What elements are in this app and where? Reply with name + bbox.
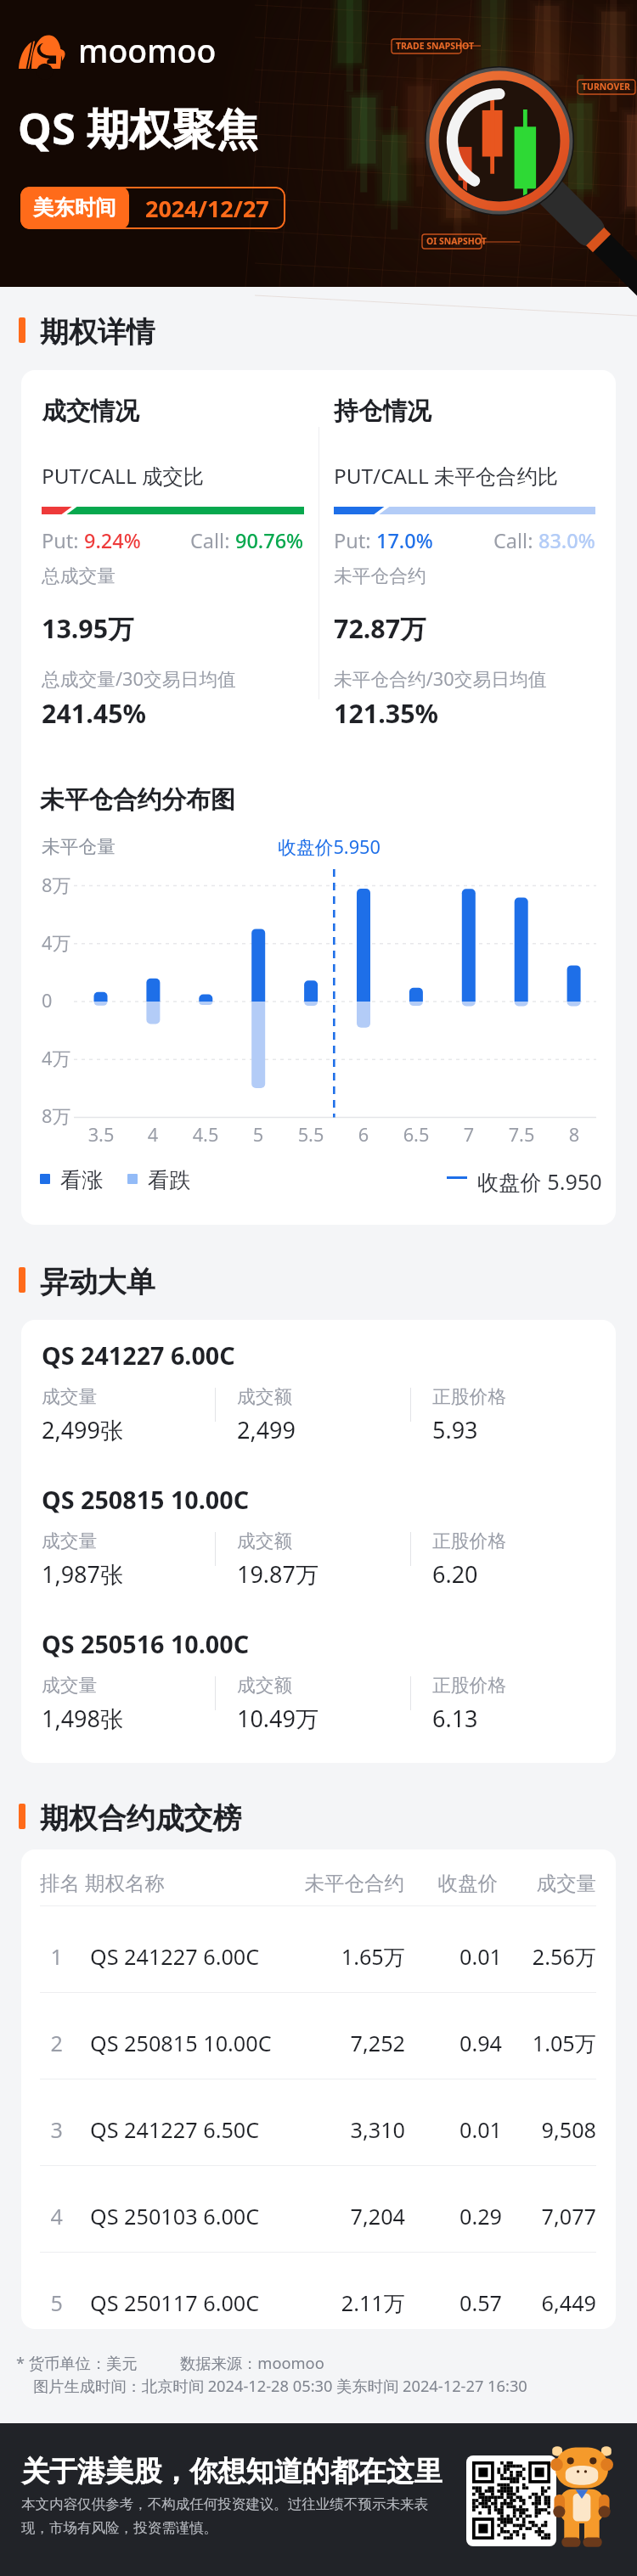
staticText: 2.11万 [277,2288,405,2317]
staticText: 期权详情 [40,314,155,351]
staticText: TRADE SNAPSHOT [396,40,474,52]
staticText: 1,498张 [42,1703,123,1734]
staticText: 5.5 [285,1122,336,1148]
staticText: Call: [190,527,235,554]
staticText: 图片生成时间：北京时间 2024-12-28 05:30 美东时间 2024-1… [33,2375,527,2396]
staticText: 美东时间 [33,195,116,222]
staticText: 2,499 [237,1414,296,1445]
staticText: 6 [338,1122,389,1148]
staticText: 9,508 [502,2115,596,2144]
staticText: 7,252 [277,2029,405,2057]
other: QR code [466,2455,556,2546]
button[interactable]: 2 [0,1993,637,2079]
staticText: 收盘价 [404,1871,498,1896]
staticText: 241.45% [42,695,147,730]
staticText: 8万 [42,873,71,898]
staticText: 7,077 [502,2202,596,2231]
staticText: Put: [42,527,84,554]
staticText: 6,449 [502,2288,596,2317]
staticText: 收盘价5.950 [270,834,381,860]
button[interactable]: QS 241227 6.00C [21,1332,616,1468]
staticText: 90.76% [235,527,304,554]
staticText: 7 [443,1122,494,1148]
staticText: 6.13 [432,1703,478,1734]
staticText: 未平仓合约 [334,564,426,587]
staticText: 121.35% [334,695,439,730]
staticText: 看跌 [148,1167,191,1194]
button[interactable]: QS 250516 10.00C [21,1620,616,1756]
staticText: OI SNAPSHOT [426,235,487,247]
staticText: 数据来源：moomoo [180,2352,324,2373]
staticText: 期权合约成交榜 [40,1800,242,1837]
staticText: 13.95万 [42,610,134,646]
staticText: 未平仓合约/30交易日均值 [334,666,547,692]
staticText: 1 [22,1942,63,1971]
staticText: TURNOVER [582,81,630,93]
button[interactable]: 3 [0,2079,637,2165]
staticText: Put: [334,527,376,554]
staticText: 总成交量/30交易日均值 [42,666,236,692]
staticText: 10.49万 [237,1703,318,1734]
button[interactable]: 4 [0,2166,637,2252]
staticText: 5.93 [432,1414,478,1445]
staticText: 8 [549,1122,600,1148]
staticText: 成交额 [237,1674,293,1697]
staticText: QS 250815 10.00C [42,1483,250,1516]
staticText: 成交量 [503,1871,596,1896]
staticText: 3 [22,2115,63,2144]
staticText: 0.01 [408,2115,502,2144]
staticText: 成交额 [237,1385,293,1408]
staticText: 1,987张 [42,1558,123,1590]
staticText: QS 250103 6.00C [90,2202,260,2231]
staticText: 0 [42,988,53,1013]
staticText: 72.87万 [334,610,426,646]
staticText: Call: [493,527,538,554]
staticText: 5 [22,2288,63,2317]
staticText: 2 [22,2029,63,2057]
staticText: 成交情况 [42,396,139,426]
staticText: 8万 [42,1103,71,1129]
staticText: 异动大单 [40,1264,155,1300]
staticText: 3,310 [277,2115,405,2144]
staticText: 0.94 [408,2029,502,2057]
staticText: QS 250117 6.00C [90,2288,260,2317]
staticText: 总成交量 [42,564,116,587]
staticText: PUT/CALL 未平仓合约比 [334,462,559,490]
staticText: 成交量 [42,1385,98,1408]
staticText: 4万 [42,930,71,956]
staticText: 期权名称 [85,1871,165,1896]
staticText: 1.65万 [277,1942,405,1971]
staticText: 2024/12/27 [145,193,269,224]
staticText: PUT/CALL 成交比 [42,462,205,490]
staticText: 正股价格 [432,1529,506,1552]
staticText: 19.87万 [237,1558,318,1590]
staticText: 0.29 [408,2202,502,2231]
staticText: 0.01 [408,1942,502,1971]
staticText: 现，市场有风险，投资需谨慎。 [21,2519,218,2537]
staticText: 2.56万 [502,1942,596,1971]
staticText: 2,499张 [42,1414,123,1445]
staticText: 成交量 [42,1674,98,1697]
staticText: moomoo [78,29,217,72]
staticText: 未平仓量 [42,835,116,858]
staticText: 5 [233,1122,284,1148]
staticText: 3.5 [76,1122,127,1148]
staticText: QS 250815 10.00C [90,2029,272,2057]
staticText: 83.0% [538,527,595,554]
staticText: 未平仓合约分布图 [40,784,235,815]
button[interactable]: 5 [0,2253,637,2338]
staticText: 收盘价 5.950 [477,1167,602,1196]
staticText: 7.5 [496,1122,547,1148]
button[interactable]: QS 250815 10.00C [21,1476,616,1612]
staticText: 看涨 [60,1167,104,1194]
staticText: 7,204 [277,2202,405,2231]
staticText: 6.5 [391,1122,442,1148]
button[interactable]: 1 [0,1906,637,1992]
staticText: * 货币单位：美元 [16,2352,138,2373]
staticText: 4 [22,2202,63,2231]
staticText: 关于港美股，你想知道的都在这里 [21,2454,443,2489]
staticText: 6.20 [432,1558,478,1590]
staticText: QS 241227 6.00C [42,1339,235,1372]
staticText: 持仓情况 [334,396,431,426]
button[interactable]: 美东时间 [20,187,285,229]
